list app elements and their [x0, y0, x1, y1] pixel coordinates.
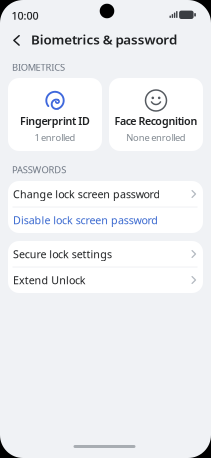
button[interactable]: Fingerprint ID [8, 78, 102, 151]
staticText: 1 enrolled [34, 131, 76, 143]
button[interactable]: Disable lock screen password [8, 207, 203, 233]
staticText: PASSWORDS [12, 163, 66, 176]
button[interactable]: Face Recognition [109, 78, 203, 151]
staticText: Extend Unlock [13, 273, 86, 287]
staticText: 10:00 [11, 8, 38, 23]
staticText: Disable lock screen password [13, 213, 158, 227]
staticText: BIOMETRICS [12, 61, 65, 73]
staticText: Secure lock settings [13, 247, 112, 261]
staticText: Biometrics & password [31, 30, 177, 48]
button[interactable] [7, 31, 25, 49]
button[interactable]: Extend Unlock [8, 267, 203, 293]
staticText: Face Recognition [114, 114, 197, 128]
staticText: Fingerprint ID [20, 114, 90, 128]
staticText: Change lock screen password [13, 187, 160, 201]
button[interactable]: Change lock screen password [8, 181, 203, 207]
button[interactable]: Secure lock settings [8, 241, 203, 267]
staticText: None enrolled [126, 131, 186, 143]
